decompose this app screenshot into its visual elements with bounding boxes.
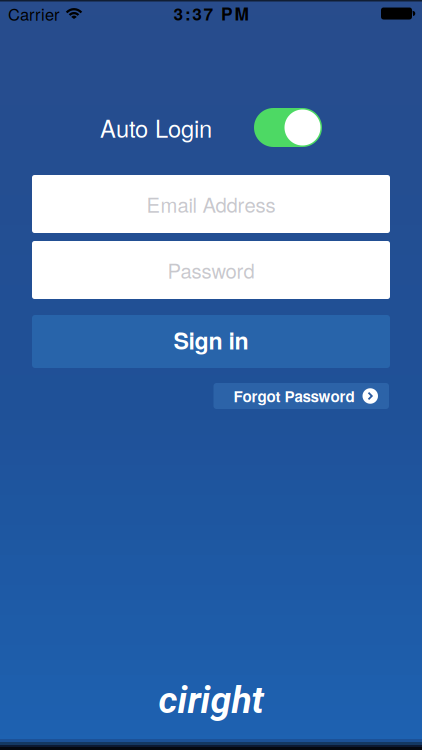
staticText: ciright [158,678,263,722]
staticText: Forgot Password [233,385,354,407]
button[interactable]: Email Address [0,175,422,233]
staticText: 3:37 PM [174,1,248,26]
button[interactable]: Auto Login [254,108,322,147]
staticText: Password [167,255,254,284]
button[interactable]: Password [0,241,422,299]
button[interactable]: Sign in [0,315,422,368]
staticText: Email Address [146,189,275,218]
button[interactable]: Forgot Password [213,383,389,409]
staticText: Sign in [173,323,248,357]
staticText: Carrier [8,2,60,25]
staticText: Auto Login [100,110,212,144]
